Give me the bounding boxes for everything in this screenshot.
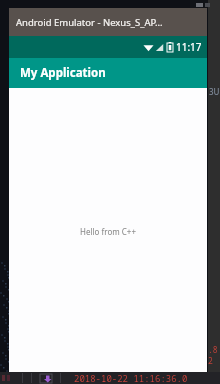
staticText: 3U bbox=[209, 86, 220, 97]
other: Cellular signal bbox=[155, 43, 164, 52]
staticText: Hello from C++ bbox=[80, 226, 136, 237]
other: Battery bbox=[167, 42, 173, 52]
staticText: 2018-10-22 11:16:36.0 bbox=[74, 372, 188, 384]
other: Wi-Fi signal bbox=[143, 43, 154, 52]
staticText: .8 2 bbox=[208, 344, 218, 366]
staticText: Android Emulator - Nexus_S_AP... bbox=[16, 16, 163, 29]
button[interactable]: Android Emulator - Nexus_S_AP... bbox=[9, 8, 207, 36]
staticText: 11:17 bbox=[176, 40, 202, 54]
staticText: My Application bbox=[20, 65, 106, 81]
